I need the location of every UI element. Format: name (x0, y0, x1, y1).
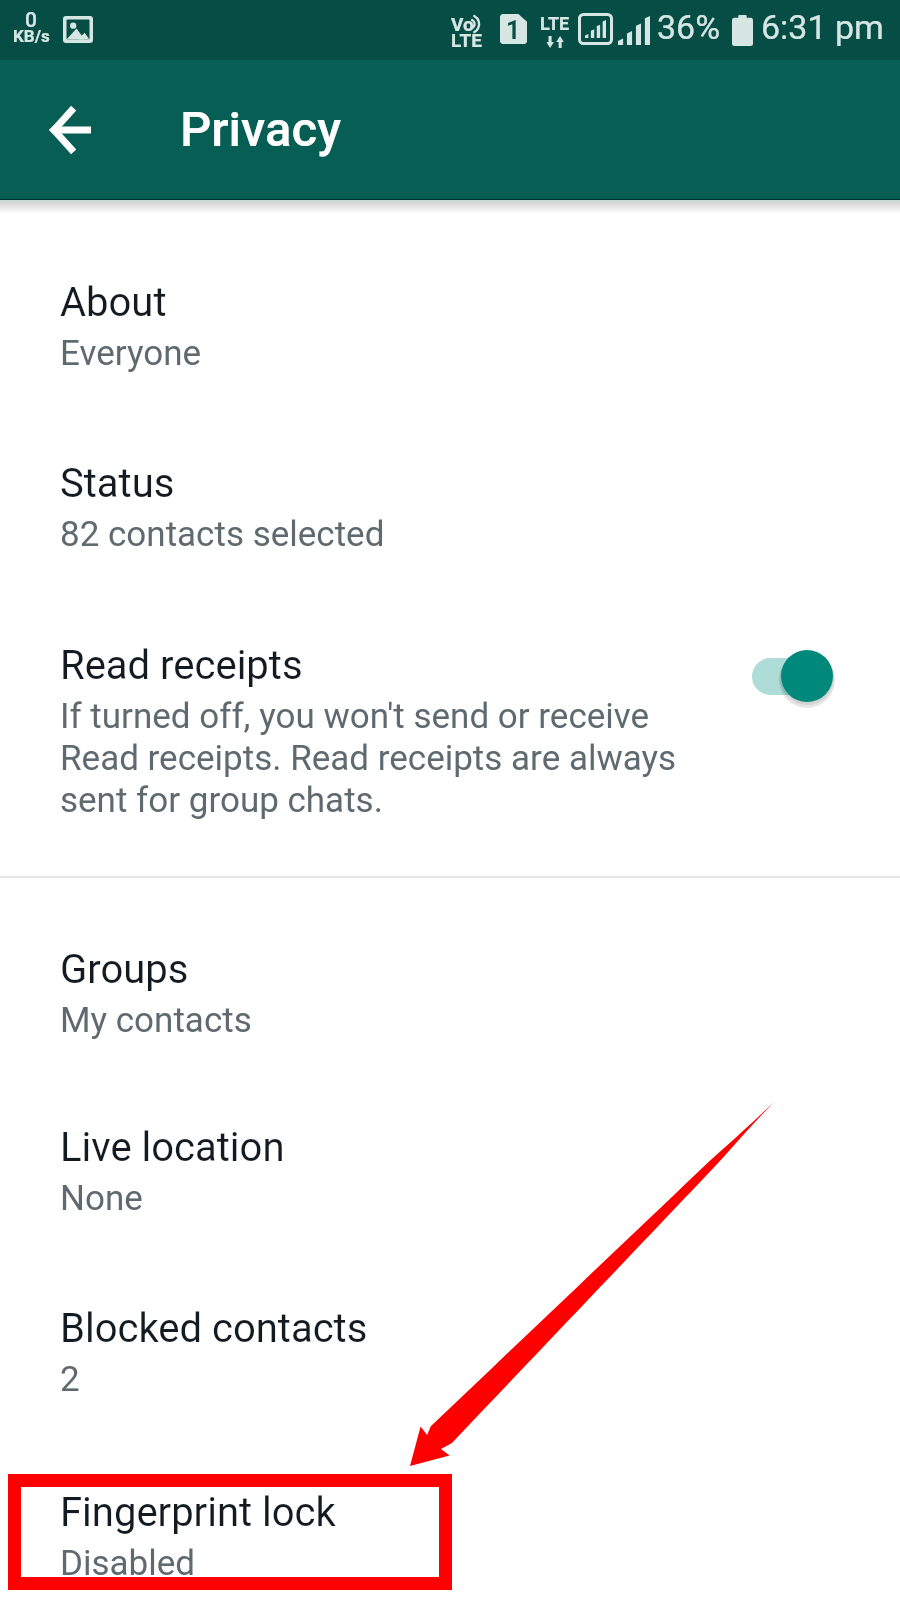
staticText: Fingerprint lock (60, 1489, 336, 1536)
button[interactable]: Back (26, 86, 114, 174)
button[interactable]: Live location (0, 1102, 900, 1252)
staticText: Live location (60, 1124, 285, 1171)
button[interactable]: Read receipts toggle (735, 636, 850, 712)
staticText: Read receipts (60, 642, 303, 689)
staticText: Groups (60, 946, 189, 993)
staticText: My contacts (60, 1000, 252, 1041)
staticText: If turned off, you won't send or receive… (60, 696, 690, 821)
staticText: KB/s (13, 26, 50, 46)
button[interactable]: Fingerprint lock (0, 1467, 900, 1600)
staticText: About (60, 279, 167, 326)
staticText: Status (60, 460, 175, 507)
button[interactable]: Blocked contacts (0, 1283, 900, 1433)
staticText: None (60, 1178, 143, 1219)
staticText: Disabled (60, 1543, 196, 1584)
staticText: Everyone (60, 333, 202, 374)
staticText: LTE (451, 29, 482, 51)
button[interactable]: Groups (0, 924, 900, 1074)
staticText: Vo (451, 13, 474, 35)
staticText: 82 contacts selected (60, 514, 385, 555)
staticText: 1 (506, 16, 521, 45)
staticText: Blocked contacts (60, 1305, 368, 1352)
staticText: LTE (540, 13, 570, 34)
staticText: 0 (25, 8, 37, 33)
staticText: 6:31 pm (761, 7, 884, 47)
staticText: Privacy (180, 101, 342, 158)
button[interactable]: Status (0, 438, 900, 588)
button[interactable]: About (0, 257, 900, 407)
staticText: 2 (60, 1359, 80, 1400)
button[interactable]: Read receipts (0, 620, 900, 842)
staticText: 36% (657, 7, 721, 47)
